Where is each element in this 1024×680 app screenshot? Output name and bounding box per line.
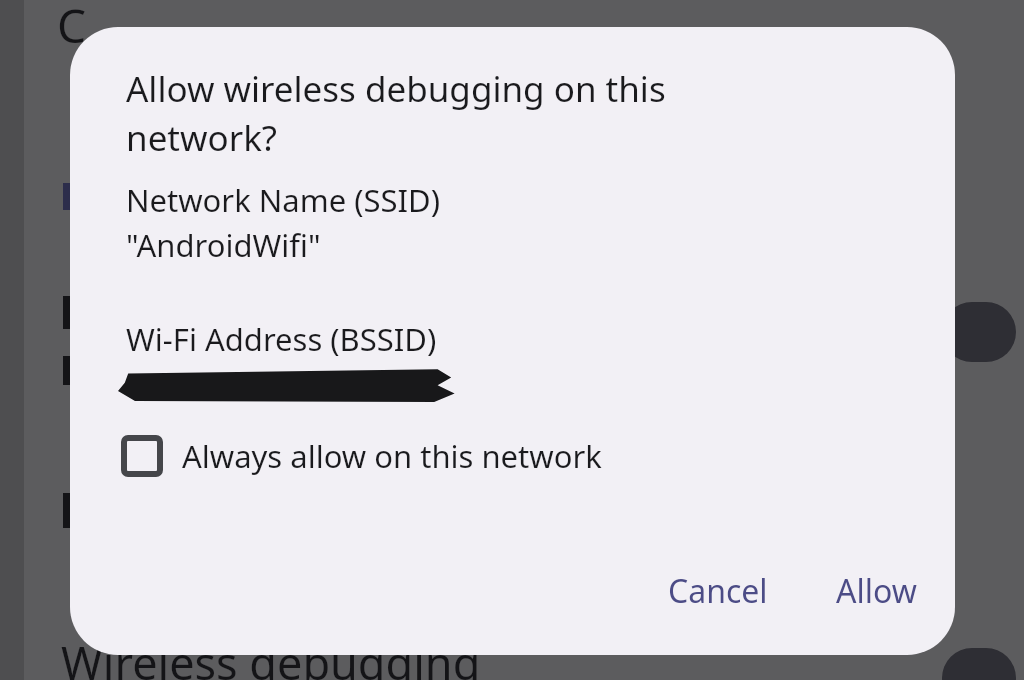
staticText: Network Name (SSID) "AndroidWifi" — [126, 179, 441, 266]
staticText: Allow — [836, 569, 917, 613]
button[interactable]: Cancel — [644, 553, 792, 629]
staticText: Wi-Fi Address (BSSID) — [126, 318, 437, 360]
staticText: C — [57, 0, 87, 57]
button[interactable]: Allow — [812, 553, 941, 629]
staticText: Allow wireless debugging on this network… — [126, 65, 666, 161]
button[interactable]: Always allow on this network checkbox — [114, 423, 602, 489]
staticText: Cancel — [668, 569, 768, 613]
staticText: Wireless debugging — [61, 632, 481, 680]
other: Always allow on this network checkbox — [114, 428, 170, 484]
staticText: Always allow on this network — [182, 435, 602, 477]
